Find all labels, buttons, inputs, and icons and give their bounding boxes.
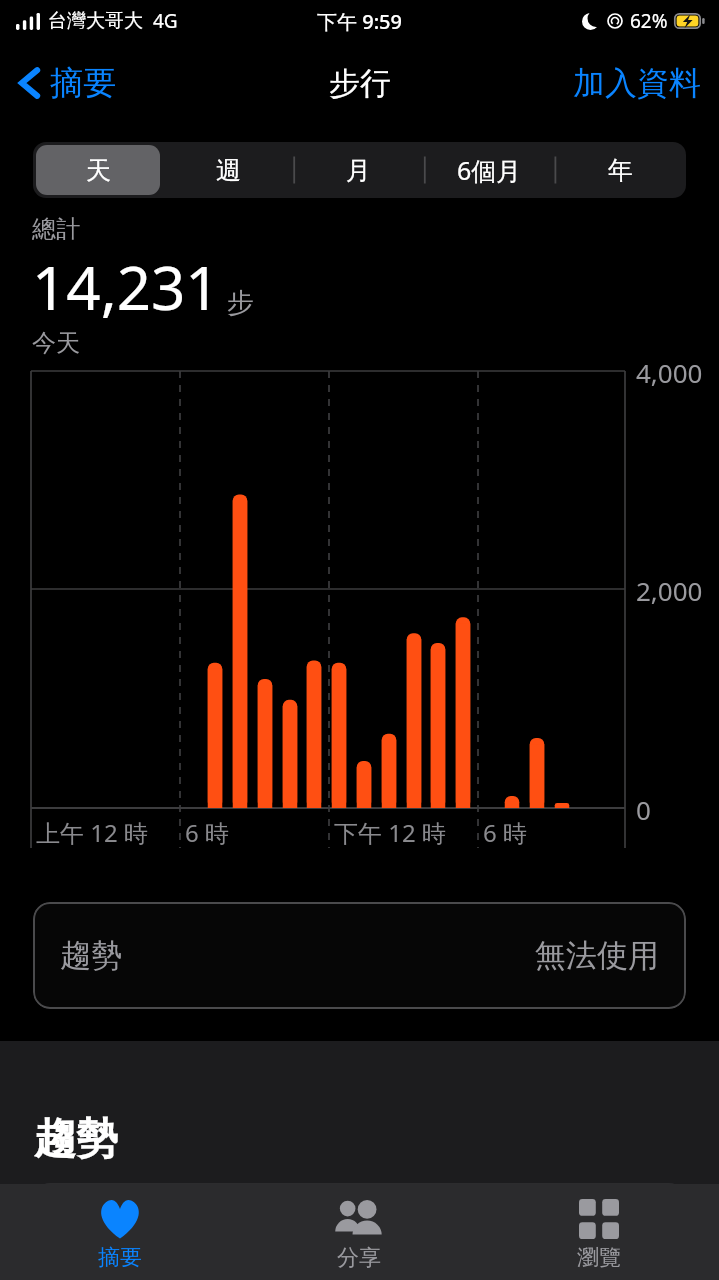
staticText: 瀏覽 (577, 1244, 621, 1272)
staticText: 分享 (337, 1244, 381, 1272)
staticText: 步 (227, 286, 254, 320)
staticText: 上午 12 時 (36, 816, 148, 849)
button[interactable]: 加入資料 (569, 55, 705, 111)
staticText: 摘要 (50, 62, 116, 104)
button[interactable]: 摘要 (0, 1184, 239, 1280)
staticText: 14,231 (32, 246, 220, 328)
staticText: 6個月 (457, 153, 522, 187)
other: 摘要 (98, 1199, 142, 1239)
staticText: 6 時 (185, 816, 229, 849)
staticText: 0 (636, 792, 651, 827)
staticText: 天 (86, 155, 111, 186)
other: 瀏覽 (579, 1199, 619, 1239)
staticText: 年 (608, 155, 633, 186)
button[interactable]: 天 (36, 145, 160, 195)
staticText: 下午 9:59 (317, 8, 402, 35)
staticText: 4,000 (636, 355, 703, 390)
button[interactable]: 週 (166, 145, 290, 195)
staticText: 趨勢 (60, 936, 122, 975)
staticText: 總計 (32, 214, 80, 244)
other: 分享 (332, 1199, 386, 1239)
button[interactable]: 月 (296, 145, 421, 195)
staticText: 下午 12 時 (334, 816, 446, 849)
staticText: 加入資料 (573, 63, 701, 103)
staticText: 2,000 (636, 573, 703, 608)
staticText: 台灣大哥大 (48, 9, 143, 33)
staticText: 今天 (32, 328, 80, 358)
button[interactable]: 分享 (239, 1184, 479, 1280)
button[interactable]: 趨勢 (33, 902, 686, 1009)
staticText: 62% (630, 8, 668, 34)
staticText: 摘要 (98, 1244, 142, 1272)
staticText: 月 (346, 155, 371, 186)
button[interactable]: 摘要 (12, 54, 122, 112)
staticText: 無法使用 (535, 936, 659, 975)
staticText: 趨勢 (34, 1113, 118, 1166)
staticText: 6 時 (483, 816, 527, 849)
button[interactable]: 瀏覽 (479, 1184, 719, 1280)
staticText: 週 (216, 155, 241, 186)
button[interactable]: 6個月 (427, 145, 552, 195)
staticText: 4G (153, 8, 178, 34)
button[interactable]: 年 (558, 145, 683, 195)
staticText: 步行 (329, 64, 391, 103)
